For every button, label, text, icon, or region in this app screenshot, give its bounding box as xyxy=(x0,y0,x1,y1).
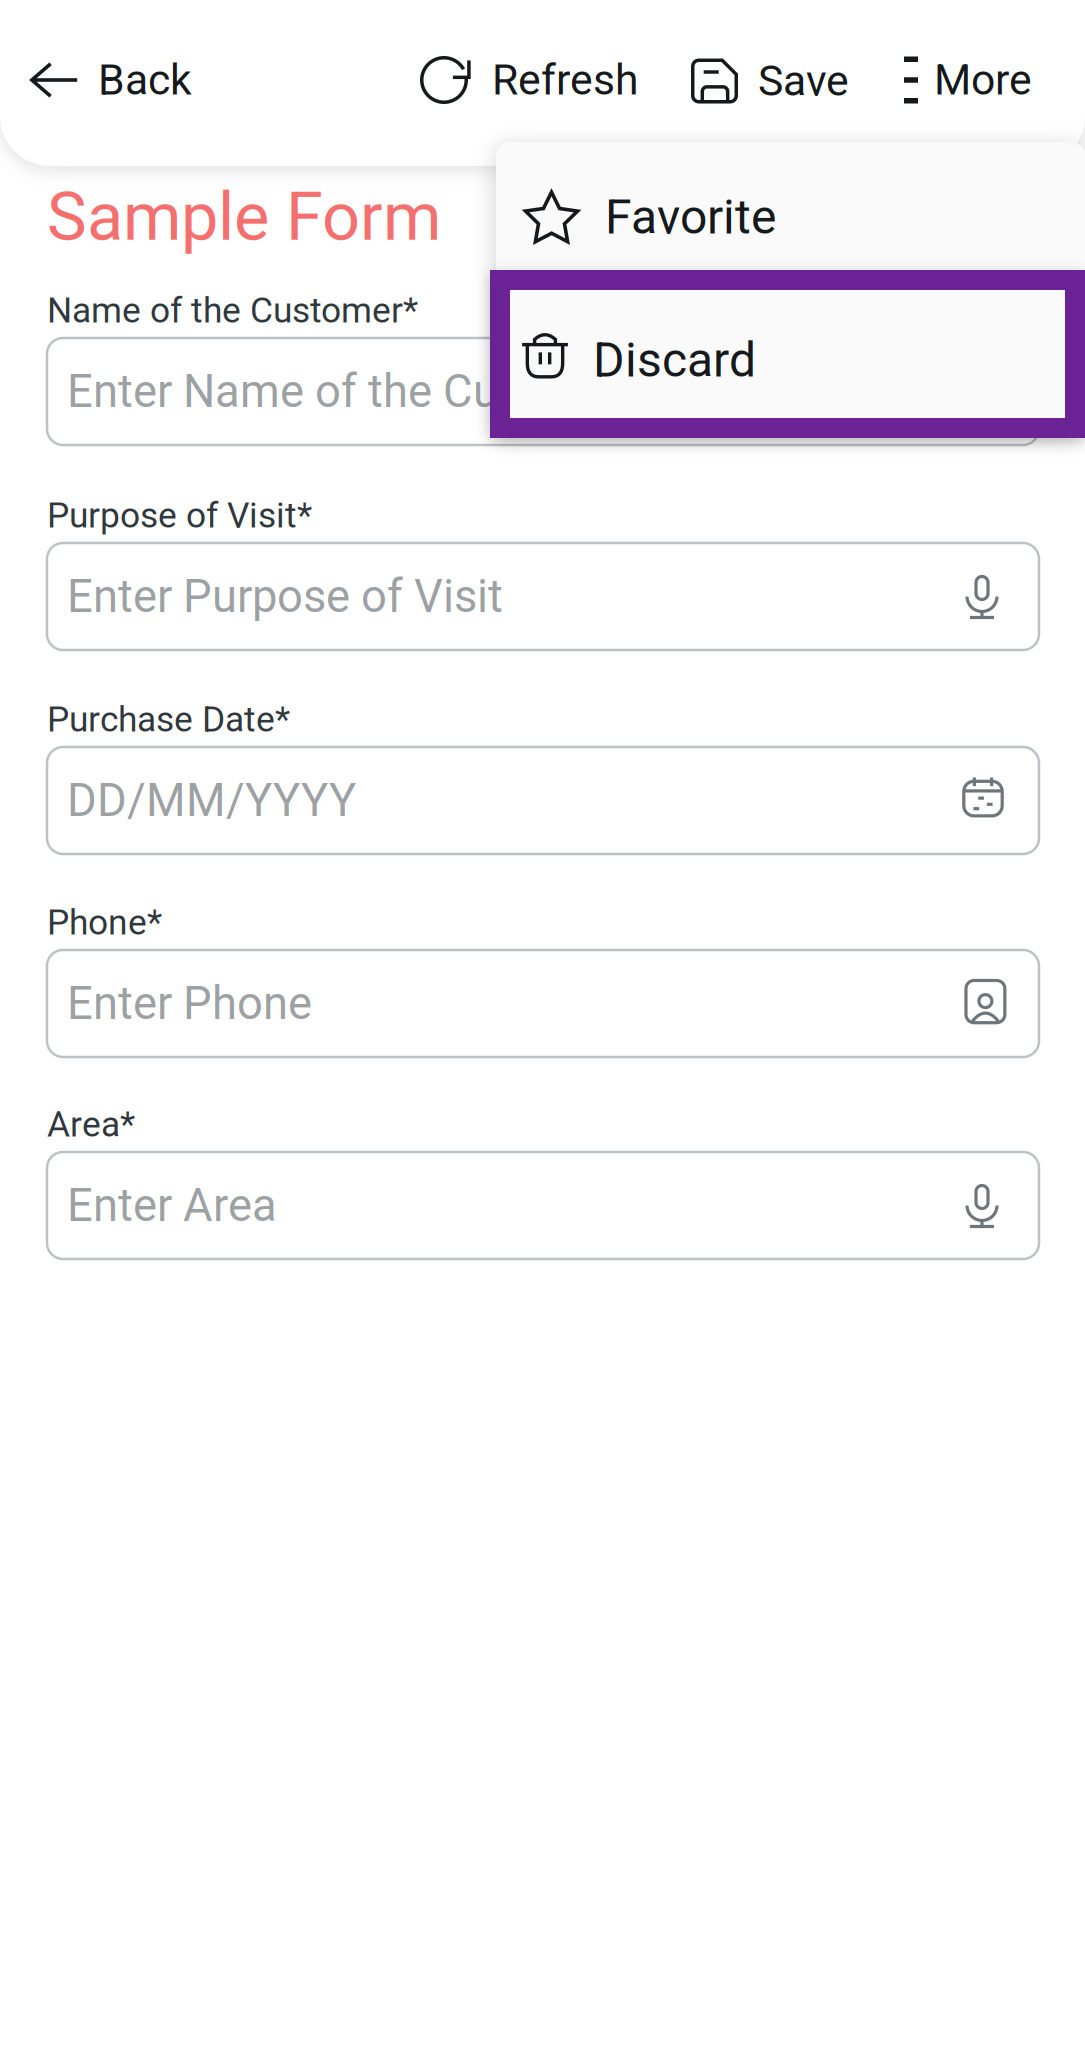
staticText: More xyxy=(934,55,1032,105)
button[interactable]: Enter Area xyxy=(47,1152,1039,1259)
staticText: Sample Form xyxy=(47,178,441,256)
staticText: Enter Purpose of Visit xyxy=(67,570,503,623)
button[interactable]: Discard xyxy=(490,270,1085,438)
staticText: Enter Name of the Customer xyxy=(67,365,640,418)
staticText: Save xyxy=(758,56,849,106)
button[interactable]: Enter Phone xyxy=(47,950,1039,1057)
button[interactable]: Enter Name of the Customer xyxy=(47,338,1039,445)
staticText: Area* xyxy=(47,1104,135,1145)
staticText: DD/MM/YYYY xyxy=(67,774,356,827)
staticText: Phone* xyxy=(47,902,162,943)
staticText: Purpose of Visit* xyxy=(47,495,312,536)
button[interactable]: Enter Purpose of Visit xyxy=(47,543,1039,650)
staticText: Refresh xyxy=(492,55,639,105)
staticText: Purchase Date* xyxy=(47,699,290,740)
button[interactable]: DD/MM/YYYY xyxy=(47,747,1039,854)
staticText: Favorite xyxy=(605,189,776,245)
staticText: Name of the Customer* xyxy=(47,290,418,331)
staticText: Back xyxy=(98,55,192,105)
staticText: Enter Area xyxy=(67,1179,277,1232)
staticText: Discard xyxy=(593,332,756,388)
staticText: Enter Phone xyxy=(67,977,312,1030)
